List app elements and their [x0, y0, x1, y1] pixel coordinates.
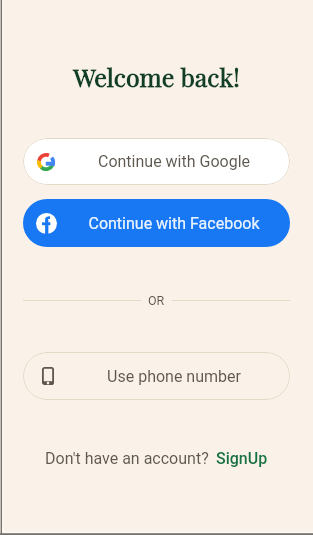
staticText: Don't have an account?: [45, 449, 209, 468]
staticText: Continue with Google: [58, 152, 290, 171]
staticText: Continue with Facebook: [58, 214, 290, 233]
staticText: Use phone number: [58, 367, 290, 386]
button[interactable]: Use phone number: [23, 352, 290, 400]
button[interactable]: SignUp: [216, 449, 268, 468]
staticText: Welcome back!: [0, 60, 313, 93]
staticText: SignUp: [216, 449, 268, 468]
staticText: OR: [148, 293, 165, 307]
button[interactable]: Continue with Google: [23, 138, 290, 185]
button[interactable]: Continue with Facebook: [23, 199, 290, 247]
